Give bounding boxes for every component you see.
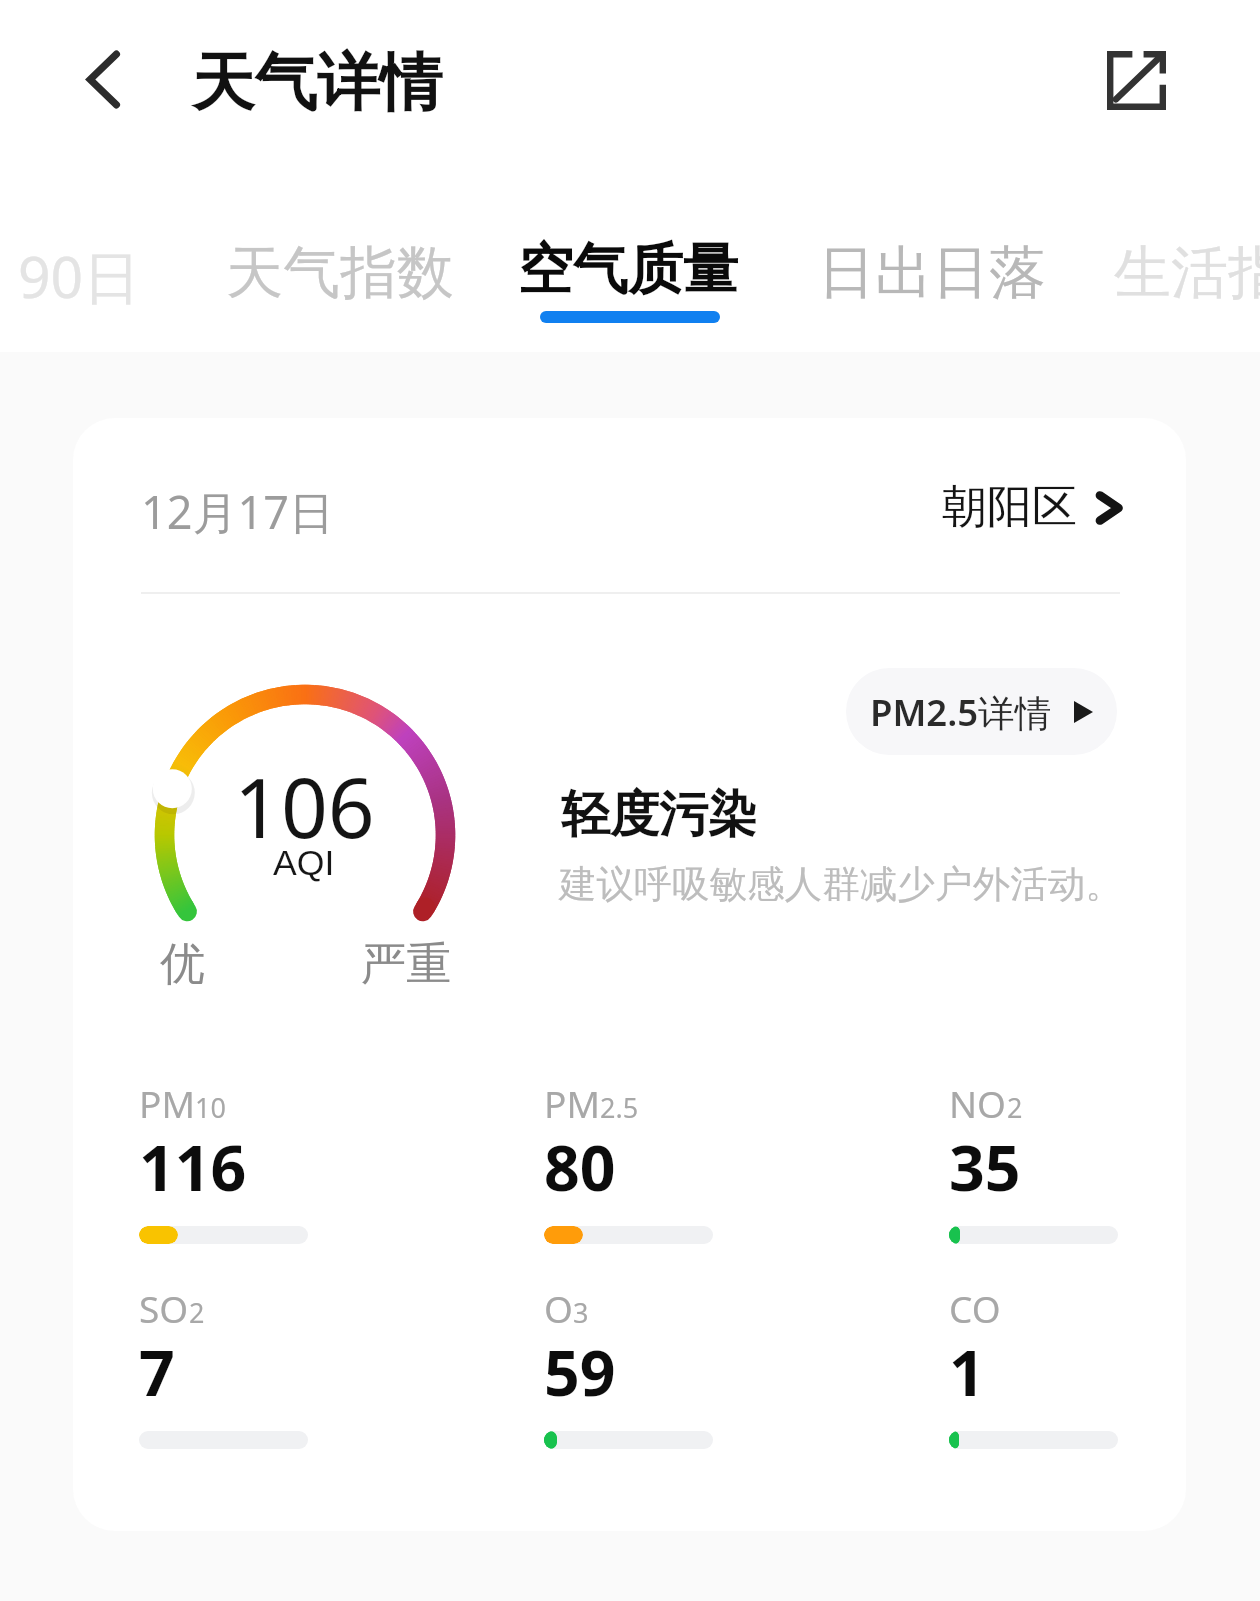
button[interactable]: NO bbox=[949, 1078, 1139, 1268]
button[interactable]: Share bbox=[1086, 30, 1186, 130]
staticText: PM bbox=[139, 1078, 195, 1128]
button[interactable]: 日出日落 bbox=[818, 237, 1046, 309]
staticText: 1 bbox=[949, 1329, 985, 1414]
staticText: 12月17日 bbox=[141, 481, 334, 542]
staticText: 建议呼吸敏感人群减少户外活动。 bbox=[559, 861, 1123, 908]
button[interactable]: CO bbox=[949, 1283, 1139, 1473]
button[interactable]: PM bbox=[139, 1078, 329, 1268]
button[interactable]: 朝阳区 bbox=[942, 479, 1121, 536]
button[interactable]: Back bbox=[51, 27, 155, 131]
staticText: 10 bbox=[195, 1089, 226, 1126]
staticText: NO bbox=[949, 1078, 1007, 1128]
staticText: 严重 bbox=[361, 936, 451, 993]
staticText: 朝阳区 bbox=[942, 479, 1077, 536]
staticText: 116 bbox=[139, 1124, 247, 1209]
staticText: 空气质量 bbox=[518, 235, 738, 304]
staticText: 7 bbox=[139, 1329, 175, 1414]
staticText: 天气详情 bbox=[192, 44, 442, 123]
staticText: SO bbox=[139, 1283, 189, 1333]
button[interactable]: 90日 bbox=[18, 237, 141, 315]
staticText: CO bbox=[949, 1283, 1001, 1333]
button[interactable]: O bbox=[544, 1283, 734, 1473]
staticText: O bbox=[544, 1283, 573, 1333]
staticText: 2 bbox=[189, 1294, 205, 1331]
button[interactable]: 空气质量 bbox=[518, 235, 738, 304]
staticText: 3 bbox=[573, 1294, 589, 1331]
button[interactable]: PM2.5详情 bbox=[846, 668, 1117, 755]
staticText: PM bbox=[544, 1078, 600, 1128]
staticText: 35 bbox=[949, 1124, 1021, 1209]
staticText: AQI bbox=[273, 843, 335, 883]
staticText: PM2.5详情 bbox=[870, 687, 1052, 737]
staticText: 2.5 bbox=[600, 1089, 639, 1126]
staticText: 优 bbox=[160, 936, 205, 993]
button[interactable]: 天气指数 bbox=[226, 237, 454, 309]
staticText: 59 bbox=[544, 1329, 616, 1414]
staticText: 轻度污染 bbox=[561, 784, 757, 846]
staticText: 106 bbox=[234, 750, 375, 862]
staticText: 2 bbox=[1007, 1089, 1023, 1126]
button[interactable]: SO bbox=[139, 1283, 329, 1473]
button[interactable]: 生活指 bbox=[1114, 237, 1260, 309]
button[interactable]: PM bbox=[544, 1078, 734, 1268]
staticText: 80 bbox=[544, 1124, 616, 1209]
